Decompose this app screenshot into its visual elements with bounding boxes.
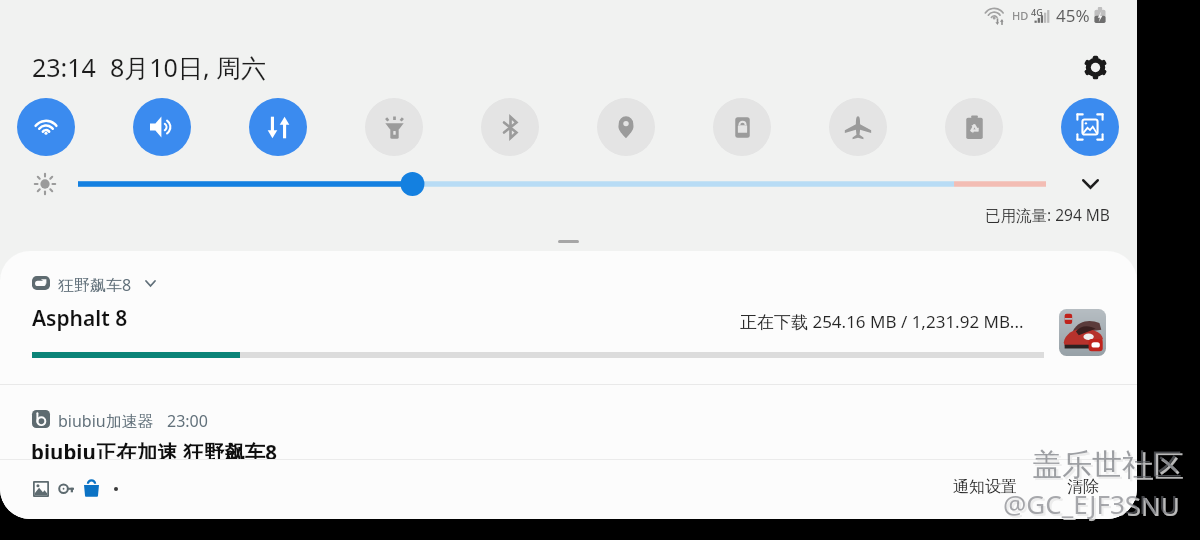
button[interactable]: Smart capture xyxy=(1061,98,1119,156)
button[interactable]: Airplane mode xyxy=(829,98,887,156)
staticText: 4G xyxy=(1031,6,1043,18)
staticText: biubiu加速器 xyxy=(58,410,154,428)
staticText: HD xyxy=(1012,8,1029,23)
button[interactable]: Brightness xyxy=(78,171,1046,197)
staticText: @GC_EJF3SNU xyxy=(1003,486,1178,521)
staticText: biubiu正在加速 狂野飙车8 xyxy=(31,438,277,466)
staticText: Asphalt 8 xyxy=(32,304,128,333)
staticText: 已用流量: 294 MB xyxy=(985,204,1110,225)
staticText: 45% xyxy=(1056,4,1090,26)
staticText: 盖乐世社区 xyxy=(1034,448,1184,486)
button[interactable]: Secure Folder xyxy=(713,98,771,156)
button[interactable]: 通知设置 xyxy=(944,470,1026,504)
staticText: 23:14 xyxy=(32,50,96,84)
staticText: 狂野飙车8 xyxy=(58,274,132,292)
staticText: 通知设置 xyxy=(953,477,1017,497)
staticText: 23:00 xyxy=(167,410,208,428)
button[interactable]: Wi-Fi xyxy=(17,98,75,156)
staticText: 8月10日, 周六 xyxy=(110,50,267,84)
button[interactable]: Flashlight xyxy=(365,98,423,156)
staticText: 清除 xyxy=(1067,477,1099,497)
button[interactable]: Location xyxy=(597,98,655,156)
button[interactable]: Sound xyxy=(133,98,191,156)
button[interactable]: Settings xyxy=(1073,45,1117,89)
staticText: 盖乐世社区 xyxy=(1032,446,1182,484)
button[interactable]: Bluetooth xyxy=(481,98,539,156)
button[interactable]: Mobile data xyxy=(249,98,307,156)
button[interactable]: 清除 xyxy=(1058,470,1108,504)
button[interactable]: Power saving xyxy=(945,98,1003,156)
staticText: 正在下载 254.16 MB / 1,231.92 MB... xyxy=(740,310,1024,333)
staticText: @GC_EJF3SNU xyxy=(1005,488,1180,523)
button[interactable]: Expand quick settings xyxy=(1072,166,1108,202)
